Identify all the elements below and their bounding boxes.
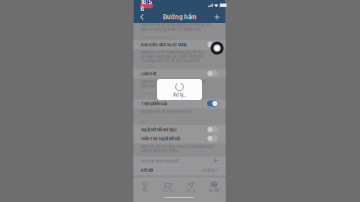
staticText: Theo phiên của xyxy=(141,101,167,106)
staticText: Nhà xyxy=(142,189,148,192)
staticText: Đường hầm xyxy=(163,13,196,21)
staticText: Nguyên kết nối theo phiên của. xyxy=(141,110,192,114)
button[interactable]: Off xyxy=(207,41,218,48)
button[interactable]: Bao gồm dịch vụ sử dụng xyxy=(141,42,218,47)
staticText: Gửi đi xyxy=(186,189,195,192)
button[interactable]: Off xyxy=(207,126,218,133)
staticText: Hiện Thư Ngắt kết nối xyxy=(141,136,180,141)
button[interactable]: Add tunnel xyxy=(211,11,223,23)
staticText: MikroTik hỗ trợ tường mạng và bạn phải n… xyxy=(141,145,214,149)
staticText: Thư thoại tính nơi, tắt dịch vụ kết nối. xyxy=(141,59,201,63)
staticText: vụ quản mạng vào các phiên đồng thời, xyxy=(141,54,205,59)
staticText: Cục bộ xyxy=(162,189,173,192)
button[interactable]: Hiện Thư Ngắt kết nối xyxy=(141,136,218,141)
button[interactable]: Luôn bật xyxy=(141,71,218,76)
button[interactable]: Off xyxy=(207,70,218,77)
staticText: Sử dụng xyxy=(201,168,214,173)
button[interactable]: Kết nối xyxy=(141,168,218,173)
button[interactable]: Ngắt kết nối khi ngủ xyxy=(141,127,218,132)
staticText: Cài đặt xyxy=(208,189,219,192)
staticText: Ngắt kết nối khi ngủ xyxy=(141,127,176,132)
button[interactable]: On xyxy=(207,100,218,107)
button[interactable]: Off xyxy=(207,135,218,142)
button[interactable]: Sử dụng xyxy=(188,168,218,173)
staticText: Kết nối xyxy=(141,168,153,173)
staticText: Bao gồm dịch vụ sử dụng xyxy=(141,42,187,47)
staticText: bạn khác nhau các ngày thường. xyxy=(141,84,194,88)
button[interactable]: Cài đặt xyxy=(202,181,225,194)
staticText: 16:56 xyxy=(141,0,153,12)
button[interactable]: Add xyxy=(213,158,218,163)
button[interactable]: Theo phiên của xyxy=(141,101,218,106)
staticText: thiết bị động trực tuyến. xyxy=(141,149,179,153)
button[interactable]: Cục bộ xyxy=(156,181,179,194)
staticText: MikroTik hỗ trợ tường mạng cho thiết bị … xyxy=(141,23,211,27)
button[interactable]: Back xyxy=(136,11,148,23)
button[interactable]: xem các kênh thứ nhất xyxy=(141,159,218,164)
button[interactable]: Nhà xyxy=(133,181,156,194)
button[interactable]: Gửi đi xyxy=(179,181,202,194)
staticText: MikroTik hỗ trợ tường mạng và một dịch xyxy=(141,50,205,55)
staticText: Đường hầm xyxy=(141,92,159,96)
staticText: bạn sử dụng tuỳ phần kết đường hầm. xyxy=(141,27,202,32)
staticText: xem các kênh thứ nhất xyxy=(141,159,178,163)
staticText: Luôn bật xyxy=(141,71,156,76)
staticText: MikroTik hỗ trợ tường mạng dịch vụ cho xyxy=(141,79,205,84)
staticText: Xử lý... xyxy=(173,92,186,97)
